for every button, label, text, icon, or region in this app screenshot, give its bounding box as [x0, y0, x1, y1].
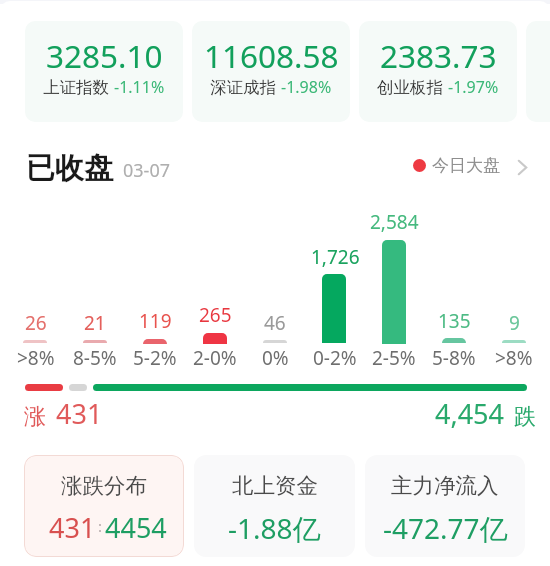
- button[interactable]: 北上资金: [194, 455, 355, 557]
- staticText: 今日大盘: [432, 155, 500, 176]
- staticText: 已收盘: [26, 150, 113, 187]
- staticText: 创业板指: [377, 77, 443, 98]
- staticText: -1.97%: [448, 76, 499, 98]
- staticText: 26: [25, 310, 47, 336]
- staticText: 03-07: [123, 158, 170, 183]
- staticText: >8%: [17, 345, 55, 371]
- staticText: 2-0%: [193, 345, 237, 371]
- staticText: 4454: [105, 509, 167, 546]
- staticText: 431: [56, 395, 103, 432]
- staticText: 0%: [262, 345, 289, 371]
- staticText: 5-8%: [432, 345, 476, 371]
- staticText: 3285.10: [46, 34, 163, 77]
- staticText: 北上资金: [232, 472, 318, 499]
- staticText: 119: [139, 308, 172, 334]
- staticText: 涨: [24, 403, 46, 431]
- staticText: -1.98%: [281, 76, 332, 98]
- staticText: 深证成指: [210, 77, 276, 98]
- button[interactable]: 已收盘: [26, 150, 170, 187]
- staticText: 5-2%: [133, 345, 177, 371]
- staticText: 跌: [514, 403, 536, 431]
- staticText: -1.88亿: [228, 509, 321, 547]
- staticText: :: [98, 516, 103, 536]
- staticText: 9: [509, 310, 520, 336]
- staticText: 135: [438, 308, 471, 334]
- staticText: 涨跌分布: [61, 472, 147, 499]
- button[interactable]: 11608.58: [192, 21, 350, 122]
- staticText: 0-2%: [313, 345, 357, 371]
- button[interactable]: 4,454: [435, 394, 536, 431]
- staticText: 2383.73: [380, 34, 497, 77]
- staticText: -472.77亿: [383, 509, 508, 547]
- staticText: 11608.58: [204, 34, 339, 77]
- button[interactable]: 涨跌分布: [24, 455, 184, 557]
- button[interactable]: 2383.73: [359, 21, 517, 122]
- staticText: 4,454: [435, 395, 505, 432]
- button[interactable]: 3285.10: [25, 21, 183, 122]
- staticText: -1.11%: [114, 76, 165, 98]
- button[interactable]: 主力净流入: [365, 455, 525, 557]
- staticText: 2-5%: [372, 345, 416, 371]
- staticText: 2,584: [370, 209, 419, 235]
- staticText: 1,726: [311, 244, 360, 270]
- staticText: 8-5%: [73, 345, 117, 371]
- button[interactable]: 今日大盘: [413, 155, 527, 176]
- staticText: 上证指数: [43, 77, 109, 98]
- staticText: 431: [49, 509, 96, 546]
- staticText: 265: [199, 302, 232, 328]
- button[interactable]: 涨: [24, 394, 103, 431]
- staticText: 21: [84, 310, 106, 336]
- staticText: >8%: [495, 345, 533, 371]
- staticText: 主力净流入: [391, 472, 499, 499]
- staticText: 46: [264, 310, 286, 336]
